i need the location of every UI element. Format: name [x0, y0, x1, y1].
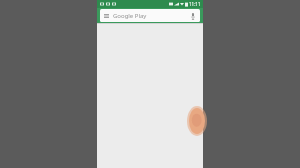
- button[interactable]: Open navigation menu: [100, 9, 200, 22]
- button[interactable]: Search by voice: [189, 12, 197, 20]
- button[interactable]: Open navigation menu: [103, 12, 110, 19]
- staticText: Google Play: [113, 12, 189, 20]
- staticText: 11:11: [189, 1, 201, 7]
